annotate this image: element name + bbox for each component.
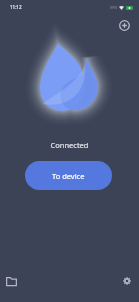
staticText: VPN	[110, 5, 117, 10]
staticText: To device	[52, 171, 85, 181]
button[interactable]: Add	[114, 15, 134, 35]
button[interactable]: Files	[0, 270, 22, 292]
staticText: Connected	[0, 140, 139, 150]
button[interactable]: To device	[25, 161, 112, 190]
staticText: 11:12	[10, 4, 22, 10]
button[interactable]: Settings	[116, 270, 138, 292]
